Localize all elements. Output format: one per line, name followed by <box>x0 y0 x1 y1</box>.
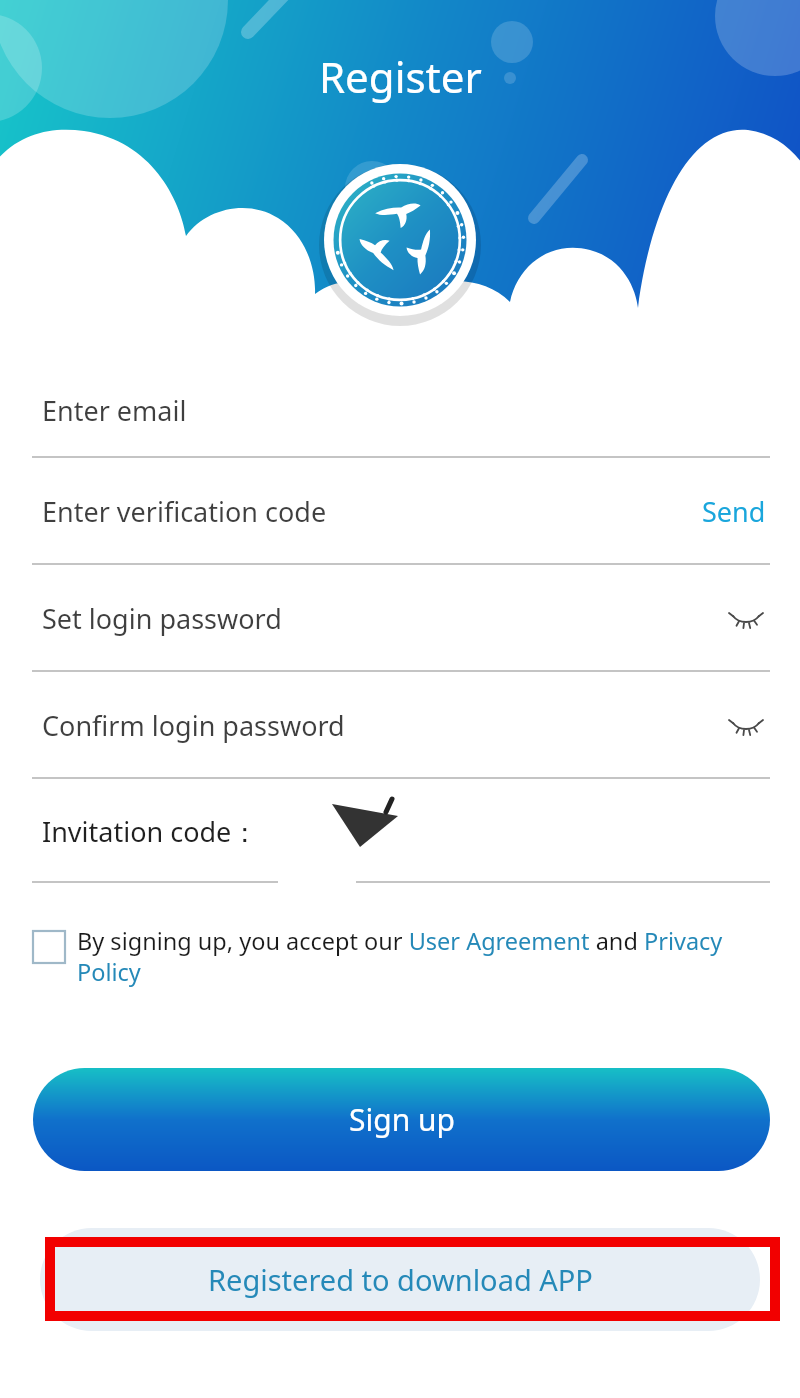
button[interactable]: Toggle password visibility <box>722 702 770 750</box>
button[interactable]: Enter verification code <box>0 458 800 565</box>
staticText: Invitation code： <box>42 813 259 850</box>
button[interactable]: By signing up, you accept our User Agree… <box>33 925 770 987</box>
button[interactable]: Sign up <box>33 1068 770 1171</box>
button[interactable]: Send <box>698 487 770 536</box>
staticText: Registered to download APP <box>208 1260 593 1299</box>
button[interactable]: Registered to download APP <box>40 1228 760 1331</box>
staticText: Enter email <box>42 392 187 429</box>
staticText: Set login password <box>42 600 282 637</box>
staticText: Enter verification code <box>42 493 327 530</box>
button[interactable]: Set login password <box>0 565 800 672</box>
staticText: By signing up, you accept our User Agree… <box>77 925 770 987</box>
button[interactable]: Toggle password visibility <box>722 595 770 643</box>
staticText: Send <box>702 493 766 530</box>
button[interactable]: Enter email <box>0 362 800 458</box>
staticText: Sign up <box>349 1099 455 1140</box>
staticText: Register <box>319 48 482 105</box>
staticText: Confirm login password <box>42 707 345 744</box>
button[interactable]: Invitation code： <box>0 779 800 883</box>
button[interactable]: Confirm login password <box>0 672 800 779</box>
